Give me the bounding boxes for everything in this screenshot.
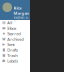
button[interactable]: Trash [0,53,30,58]
staticText: Alex Morgan [13,5,29,16]
button[interactable]: Archived [0,36,30,42]
button[interactable]: Sent [0,42,30,47]
staticText: Labels [7,58,18,63]
staticText: Trash [7,53,17,58]
staticText: Drafts [7,47,18,53]
staticText: alex@mail.com [13,16,29,23]
staticText: All [7,20,12,25]
staticText: Inbox [7,25,16,31]
button[interactable]: Labels [0,58,30,64]
button[interactable]: Inbox [0,25,30,31]
button[interactable]: Starred [0,31,30,36]
button[interactable]: Drafts [0,47,30,53]
staticText: Archived [7,36,23,42]
staticText: Sent [7,42,14,47]
staticText: Starred [7,31,20,36]
button[interactable]: All [0,20,30,25]
